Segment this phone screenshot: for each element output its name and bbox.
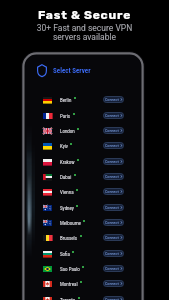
- button[interactable]: Connect: [103, 112, 124, 119]
- button[interactable]: Krakow: [25, 154, 141, 169]
- button[interactable]: Paris: [25, 108, 141, 123]
- staticText: Vienna: [60, 189, 74, 195]
- button[interactable]: Vienna: [25, 184, 141, 199]
- button[interactable]: Connect: [103, 265, 124, 272]
- staticText: 30+ Fast and secure VPN servers availabl…: [0, 23, 169, 43]
- staticText: Kyiv: [60, 143, 68, 149]
- button[interactable]: Connect: [103, 96, 124, 103]
- staticText: Connect: [105, 266, 119, 271]
- staticText: Connect: [105, 159, 119, 164]
- button[interactable]: Connect: [103, 280, 124, 287]
- staticText: Brussels: [60, 235, 78, 241]
- button[interactable]: Dubai: [25, 169, 141, 184]
- staticText: Krakow: [60, 159, 75, 165]
- staticText: Connect: [105, 113, 119, 118]
- button[interactable]: Sofia: [25, 246, 141, 261]
- button[interactable]: Sao Paulo: [25, 261, 141, 276]
- button[interactable]: Melbourne: [25, 215, 141, 230]
- staticText: Sydney: [60, 205, 74, 211]
- staticText: Connect: [105, 174, 119, 179]
- button[interactable]: Connect: [103, 142, 124, 149]
- staticText: Melbourne: [60, 220, 81, 226]
- button[interactable]: Connect: [103, 234, 124, 241]
- button[interactable]: Connect: [103, 204, 124, 211]
- staticText: Select Server: [53, 67, 91, 75]
- button[interactable]: Montreal: [25, 276, 141, 291]
- button[interactable]: Select Server: [25, 64, 141, 77]
- staticText: Berlin: [60, 97, 72, 103]
- staticText: Connect: [105, 251, 119, 256]
- staticText: Connect: [105, 97, 119, 102]
- staticText: Sao Paulo: [60, 266, 80, 272]
- staticText: Connect: [105, 189, 119, 194]
- button[interactable]: Sydney: [25, 200, 141, 215]
- button[interactable]: Berlin: [25, 92, 141, 107]
- button[interactable]: Brussels: [25, 230, 141, 245]
- staticText: Connect: [105, 143, 119, 148]
- staticText: Connect: [105, 235, 119, 240]
- staticText: Toronto: [60, 297, 76, 300]
- button[interactable]: Connect: [103, 296, 124, 300]
- staticText: London: [60, 128, 75, 134]
- staticText: Connect: [105, 205, 119, 210]
- staticText: Dubai: [60, 174, 72, 180]
- button[interactable]: Connect: [103, 219, 124, 226]
- staticText: Connect: [105, 281, 119, 286]
- button[interactable]: Connect: [103, 188, 124, 195]
- button[interactable]: Toronto: [25, 292, 141, 300]
- staticText: Sofia: [60, 251, 70, 257]
- button[interactable]: Connect: [103, 127, 124, 134]
- button[interactable]: Connect: [103, 250, 124, 257]
- button[interactable]: Kyiv: [25, 138, 141, 153]
- button[interactable]: Connect: [103, 158, 124, 165]
- staticText: Connect: [105, 297, 119, 300]
- staticText: Paris: [60, 113, 71, 119]
- button[interactable]: London: [25, 123, 141, 138]
- staticText: Fast & Secure: [0, 8, 169, 22]
- staticText: Connect: [105, 220, 119, 225]
- button[interactable]: Connect: [103, 173, 124, 180]
- staticText: Montreal: [60, 281, 78, 287]
- staticText: Connect: [105, 128, 119, 133]
